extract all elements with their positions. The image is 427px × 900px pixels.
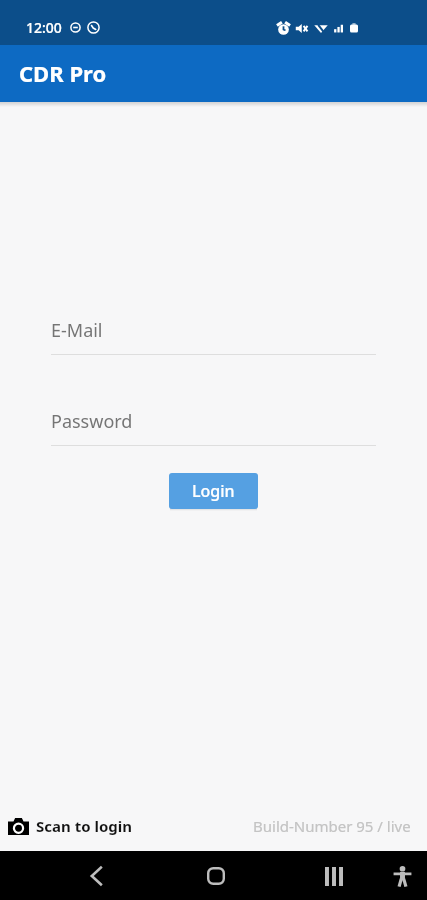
staticText: Scan to login [36, 816, 132, 836]
staticText: Password [51, 409, 133, 434]
button[interactable]: Accessibility [384, 858, 420, 894]
button[interactable]: Home [198, 858, 234, 894]
button[interactable]: Back [78, 858, 114, 894]
staticText: E-Mail [51, 318, 103, 343]
button[interactable]: Login [169, 473, 258, 509]
button[interactable]: Password [51, 405, 376, 446]
staticText: 12:00 [26, 18, 62, 37]
button[interactable]: Scan to login [8, 816, 132, 836]
button[interactable]: E-Mail [51, 314, 376, 355]
staticText: Login [192, 480, 235, 502]
button[interactable]: Recent apps [316, 858, 352, 894]
staticText: Build-Number 95 / live [253, 816, 411, 836]
staticText: CDR Pro [19, 58, 107, 88]
